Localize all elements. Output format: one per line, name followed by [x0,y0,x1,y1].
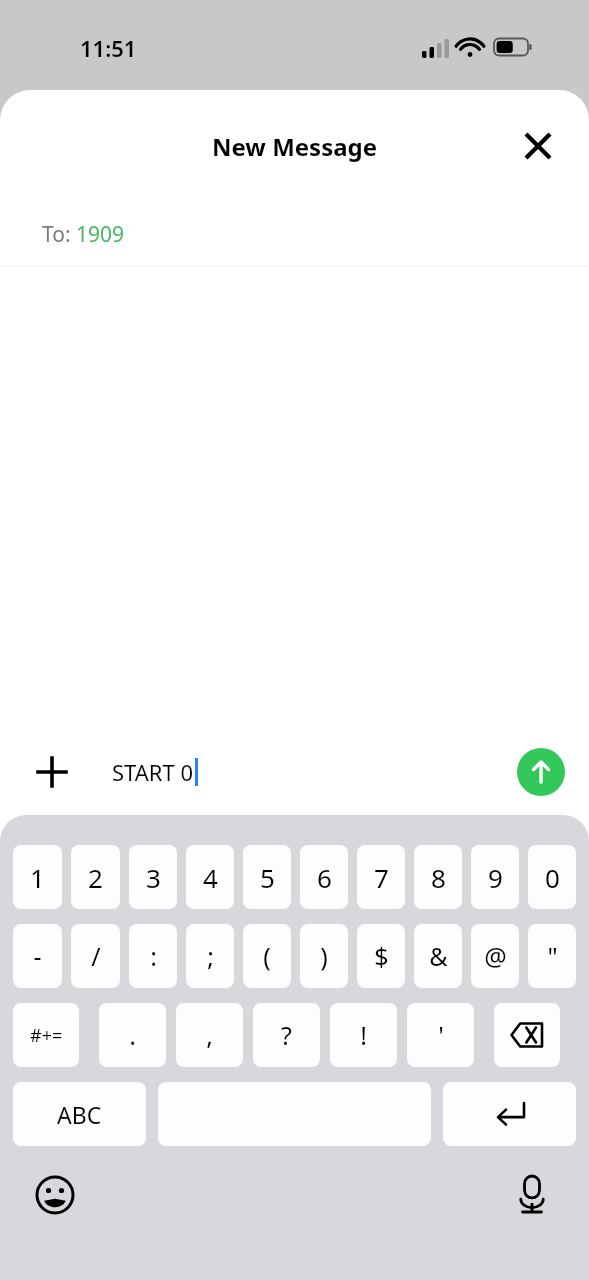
staticText: ; [207,939,214,973]
staticText: / [91,939,101,973]
button[interactable]: " [528,924,576,988]
button[interactable]: : [129,924,177,988]
button[interactable]: Return [443,1082,576,1146]
staticText: 5 [260,860,275,895]
button[interactable]: 0 [528,845,576,909]
staticText: @ [484,939,507,973]
button[interactable]: $ [357,924,405,988]
staticText: ABC [57,1099,102,1130]
button[interactable]: & [414,924,462,988]
button[interactable]: Backspace [494,1003,560,1067]
button[interactable]: #+= [13,1003,79,1067]
staticText: #+= [30,1023,63,1048]
button[interactable]: 5 [243,845,291,909]
staticText: 1909 [76,220,125,249]
button[interactable]: 6 [300,845,348,909]
staticText: New Message [212,130,378,163]
button[interactable]: 9 [471,845,519,909]
staticText: ! [360,1018,367,1052]
button[interactable]: Close [509,117,567,175]
staticText: 0 [545,860,560,895]
button[interactable]: / [71,924,120,988]
button[interactable]: 2 [71,845,120,909]
button[interactable]: ABC [13,1082,146,1146]
staticText: ( [263,939,271,973]
staticText: 9 [488,860,503,895]
staticText: , [206,1018,213,1052]
button[interactable]: To: [0,202,589,266]
staticText: 6 [317,860,332,895]
button[interactable]: Emoji [30,1170,80,1220]
button[interactable]: 1 [13,845,62,909]
staticText: " [547,939,558,973]
staticText: START 0 [112,757,194,787]
button[interactable]: 3 [129,845,177,909]
staticText: 11:51 [80,33,137,63]
staticText: & [429,939,448,973]
button[interactable]: 7 [357,845,405,909]
staticText: To: [42,220,76,249]
staticText: . [129,1018,136,1052]
button[interactable]: ? [253,1003,320,1067]
button[interactable]: - [13,924,62,988]
staticText: - [33,939,42,973]
staticText: 3 [146,860,161,895]
button[interactable]: ! [330,1003,397,1067]
staticText: 7 [374,860,389,895]
staticText: ? [281,1018,292,1052]
button[interactable]: , [176,1003,243,1067]
button[interactable]: 8 [414,845,462,909]
staticText: 8 [431,860,446,895]
button[interactable]: ( [243,924,291,988]
button[interactable]: 4 [186,845,234,909]
staticText: $ [374,939,389,973]
staticText: : [150,939,157,973]
button[interactable]: . [99,1003,166,1067]
staticText: 1 [30,860,45,895]
staticText: 4 [203,860,218,895]
button[interactable]: START 0 [90,745,573,799]
button[interactable]: ; [186,924,234,988]
staticText: ) [320,939,328,973]
staticText: ' [438,1018,444,1052]
button[interactable]: ' [407,1003,474,1067]
staticText: 2 [88,860,103,895]
button[interactable]: ) [300,924,348,988]
button[interactable]: Send [517,748,565,796]
button[interactable]: Add attachment [22,742,82,802]
button[interactable]: @ [471,924,519,988]
button[interactable]: Dictation [507,1170,557,1220]
